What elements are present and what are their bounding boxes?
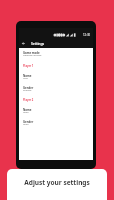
- staticText: Player 1: [23, 64, 34, 68]
- staticText: Alex: [23, 76, 28, 79]
- staticText: Male: [23, 122, 29, 125]
- staticText: Gender: [23, 86, 34, 90]
- button[interactable]: Name: [19, 105, 93, 117]
- staticText: Mike: [23, 110, 29, 113]
- staticText: Adjust your settings: [24, 178, 90, 187]
- staticText: Game mode: [23, 51, 40, 55]
- staticText: Player 2: [23, 98, 34, 102]
- button[interactable]: Gender: [19, 117, 93, 129]
- button[interactable]: Back: [19, 39, 28, 48]
- button[interactable]: Adjust your settings: [7, 169, 107, 200]
- button[interactable]: Gender: [19, 83, 93, 95]
- button[interactable]: Name: [19, 71, 93, 83]
- button[interactable]: Game mode: [19, 48, 93, 61]
- staticText: Name: [23, 108, 32, 112]
- staticText: Female: [23, 88, 32, 91]
- staticText: 12:30: [83, 33, 91, 37]
- staticText: Settings: [31, 41, 45, 46]
- staticText: Name: [23, 74, 32, 78]
- staticText: Gender: [23, 120, 34, 124]
- staticText: Gaming console: [23, 53, 42, 56]
